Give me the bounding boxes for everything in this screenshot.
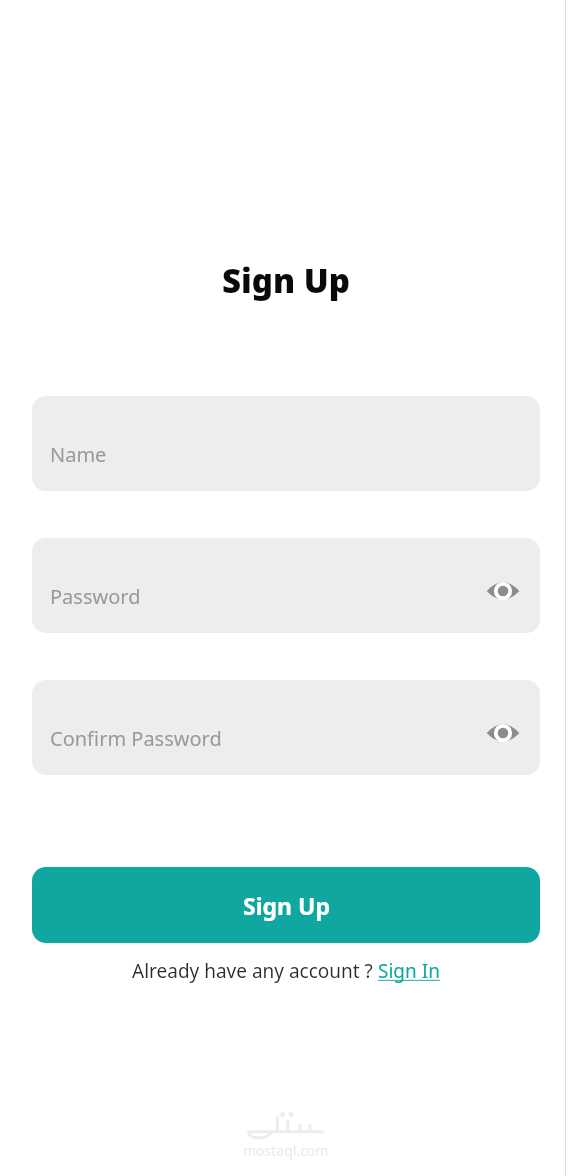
staticText: Sign In: [378, 958, 440, 984]
button[interactable]: Show confirm password: [480, 710, 526, 756]
button[interactable]: Show password: [480, 568, 526, 614]
button[interactable]: Sign In: [378, 958, 440, 984]
button[interactable]: Password: [32, 538, 540, 633]
staticText: Password: [50, 583, 141, 610]
staticText: Sign Up: [222, 258, 350, 303]
staticText: Name: [50, 441, 107, 468]
button[interactable]: Confirm Password: [32, 680, 540, 775]
button[interactable]: Sign Up: [32, 867, 540, 943]
button[interactable]: Name: [32, 396, 540, 491]
staticText: mostaql.com: [243, 1141, 329, 1160]
staticText: Already have any account ?: [132, 958, 378, 984]
staticText: Sign Up: [243, 890, 330, 921]
staticText: Confirm Password: [50, 725, 222, 752]
